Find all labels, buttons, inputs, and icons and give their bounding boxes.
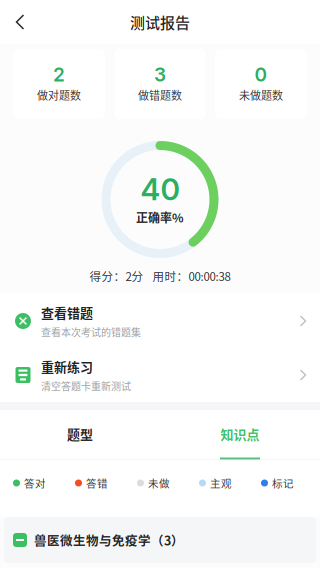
staticText: 标记: [272, 475, 294, 491]
staticText: 未做: [148, 475, 170, 491]
button[interactable]: 知识点: [160, 410, 320, 460]
staticText: 查看错题: [41, 303, 93, 322]
button[interactable]: 兽医微生物与免疫学（3）: [4, 517, 316, 563]
staticText: 2: [53, 63, 65, 86]
staticText: 知识点: [220, 424, 259, 443]
staticText: 正确率%: [136, 208, 184, 226]
staticText: 得分：2分 用时：00:00:38: [89, 268, 230, 284]
staticText: 查看本次考试的错题集: [41, 325, 141, 339]
staticText: 测试报告: [130, 11, 190, 33]
staticText: 重新练习: [41, 357, 93, 376]
staticText: 40: [140, 171, 179, 207]
staticText: 兽医微生物与免疫学（3）: [34, 531, 184, 549]
button[interactable]: 题型: [0, 410, 160, 460]
button[interactable]: Back: [0, 2, 40, 42]
staticText: 做对题数: [37, 87, 81, 103]
button[interactable]: 查看错题: [0, 294, 320, 348]
staticText: 答对: [24, 475, 46, 491]
staticText: 做错题数: [138, 87, 182, 103]
staticText: 清空答题卡重新测试: [41, 379, 131, 393]
staticText: 3: [154, 63, 166, 86]
staticText: 主观: [210, 475, 232, 491]
button[interactable]: 重新练习: [0, 348, 320, 402]
staticText: 答错: [86, 475, 108, 491]
staticText: 未做题数: [239, 87, 283, 103]
staticText: 0: [254, 63, 267, 86]
staticText: 题型: [67, 424, 93, 443]
